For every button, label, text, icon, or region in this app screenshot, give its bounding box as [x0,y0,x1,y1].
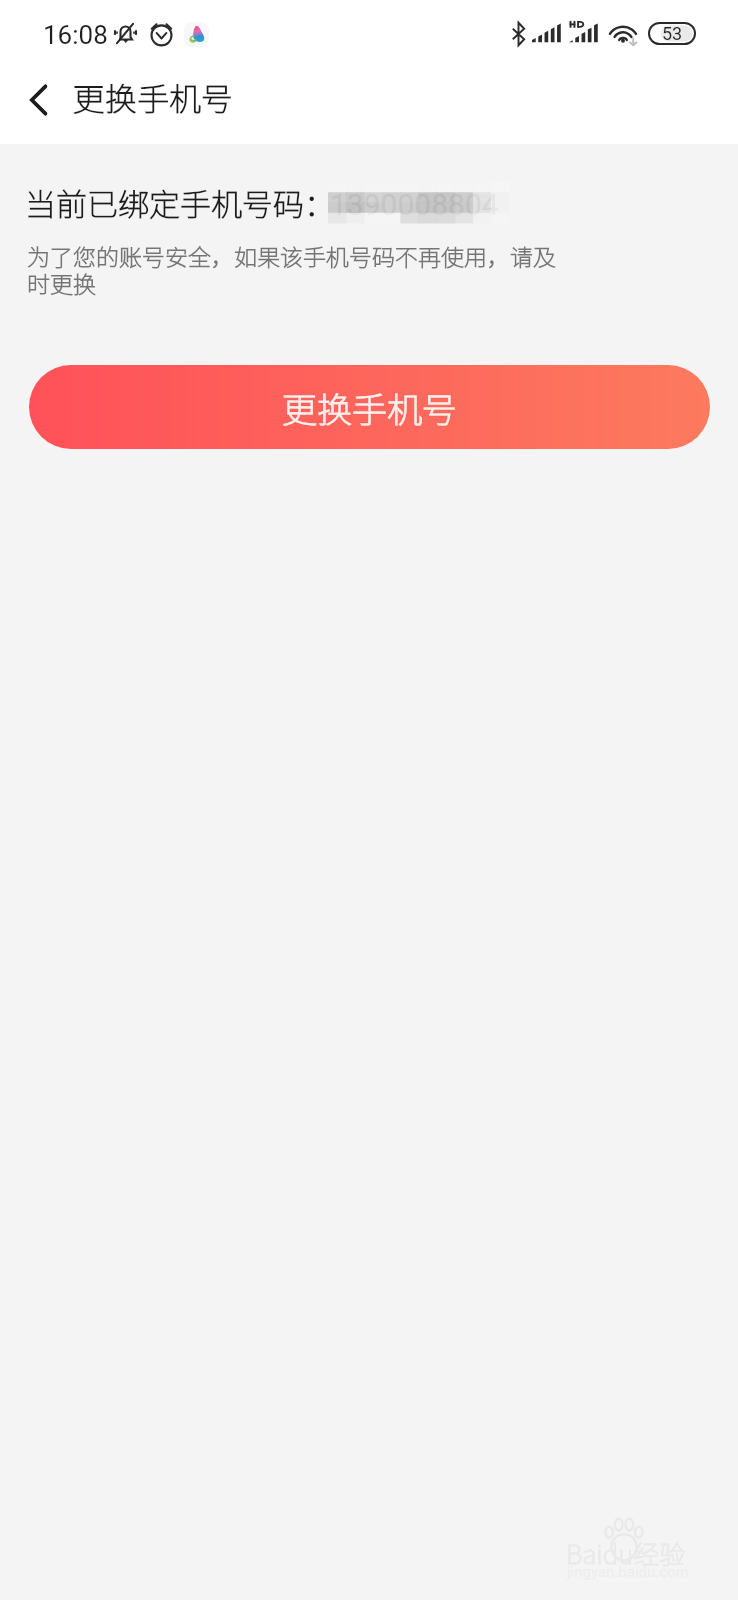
button[interactable]: Back [5,66,73,134]
staticText: 1390008804 [330,187,499,222]
button[interactable]: 更换手机号 [29,365,710,449]
staticText: Baidu经验 [566,1534,686,1572]
staticText: jingyan.baidu.com [567,1563,689,1581]
staticText: 53 [662,23,683,44]
staticText: 当前已绑定手机号码： [25,180,335,225]
staticText: 更换手机号 [282,382,458,433]
staticText: 更换手机号 [73,74,234,120]
staticText: 为了您的账号安全，如果该手机号码不再使用，请及时更换 [27,239,557,300]
staticText: 16:08 [43,20,108,50]
